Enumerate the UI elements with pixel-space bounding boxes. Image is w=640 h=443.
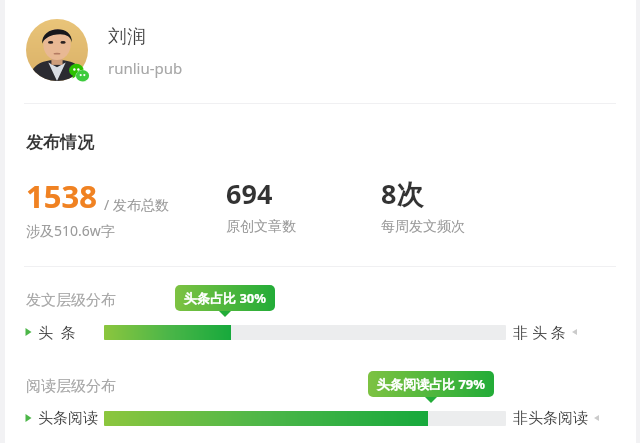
staticText: 发文层级分布	[26, 291, 116, 310]
staticText: 刘润	[108, 25, 146, 49]
staticText: 非头条阅读	[513, 409, 588, 428]
button[interactable]: 头条占比 30%	[175, 285, 275, 311]
staticText: 头条阅读占比 79%	[377, 375, 485, 393]
staticText: 每周发文频次	[381, 218, 465, 236]
staticText: 头 条	[38, 322, 76, 342]
staticText: 原创文章数	[226, 218, 296, 236]
staticText: 涉及510.6w字	[26, 221, 115, 240]
staticText: runliu-pub	[108, 58, 183, 78]
button[interactable]: WeChat	[0, 0, 640, 103]
staticText: 1538	[26, 175, 97, 217]
staticText: 头条占比 30%	[184, 289, 266, 307]
staticText: 头条阅读	[38, 409, 98, 428]
staticText: 阅读层级分布	[26, 377, 116, 396]
other: WeChat	[68, 61, 90, 83]
button[interactable]: 头 条	[0, 319, 640, 345]
button[interactable]: 头条阅读占比 79%	[368, 371, 494, 397]
staticText: 非 头 条	[513, 322, 566, 342]
staticText: / 发布总数	[104, 195, 169, 214]
staticText: 694	[226, 175, 273, 212]
staticText: 发布情况	[26, 132, 94, 153]
button[interactable]: 头条阅读	[0, 405, 640, 431]
staticText: 8次	[381, 175, 424, 212]
